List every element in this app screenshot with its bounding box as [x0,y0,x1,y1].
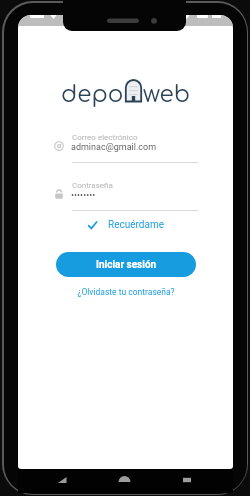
staticText: web [143,82,190,108]
staticText: ¿Olvidaste tu contraseña? [77,287,175,297]
staticText: Correo electrónico [72,133,138,142]
staticText: depo [61,82,124,108]
button[interactable]: ¿Olvidaste tu contraseña? [71,285,181,299]
other: Recuérdame [88,221,97,230]
button[interactable]: Recuérdame [88,219,164,231]
staticText: Iniciar sesión [96,259,157,271]
staticText: adminac@gmail.com [71,142,157,153]
staticText: Recuérdame [108,219,164,231]
staticText: Contraseña [72,181,113,190]
button[interactable]: Iniciar sesión [56,252,196,277]
staticText: •••••••• [71,190,96,201]
other: Navigation bar [18,469,233,493]
